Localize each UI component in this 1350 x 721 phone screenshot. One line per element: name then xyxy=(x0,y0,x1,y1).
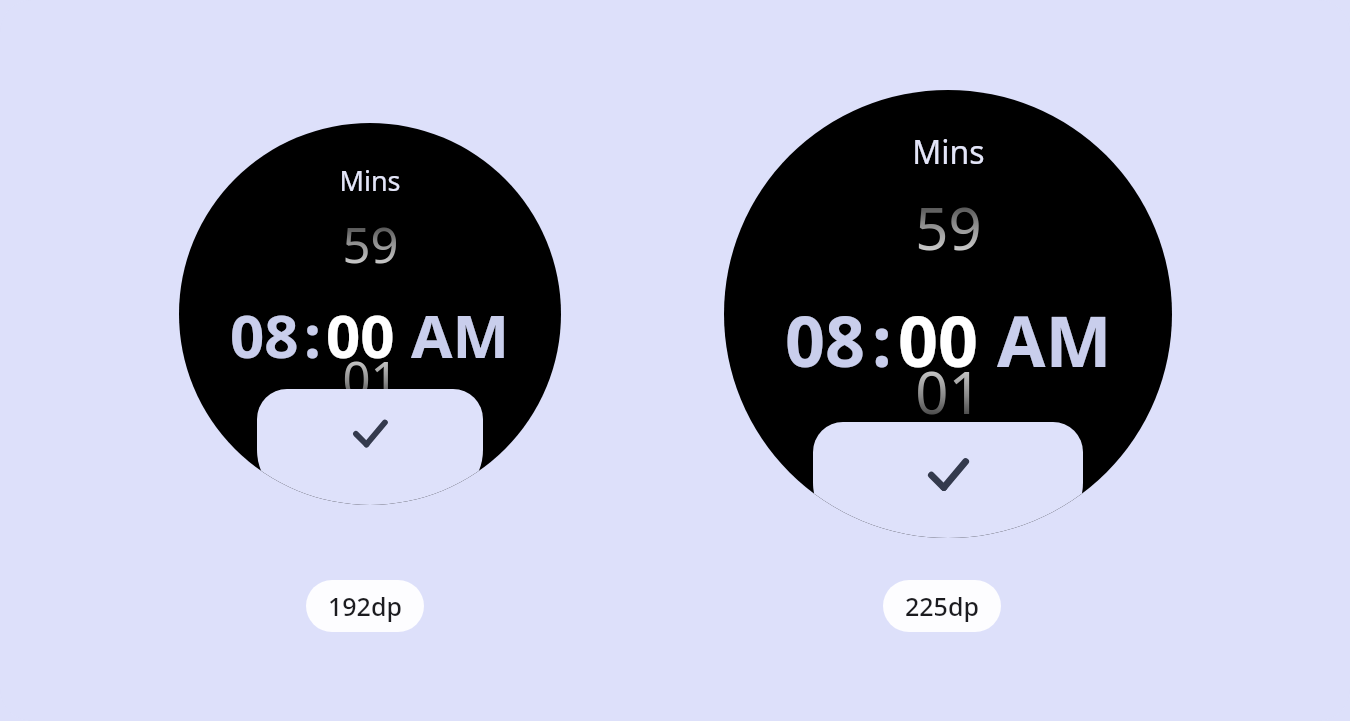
staticText: Mins xyxy=(339,162,401,199)
staticText: 59 xyxy=(342,211,399,278)
button[interactable]: AM xyxy=(411,294,510,376)
button[interactable]: 00 xyxy=(898,292,979,387)
button[interactable]: 225dp xyxy=(883,580,1001,632)
button[interactable]: Confirm xyxy=(813,422,1083,538)
staticText: Mins xyxy=(912,130,985,174)
button[interactable]: Confirm xyxy=(257,389,483,505)
staticText: 59 xyxy=(915,188,982,267)
button[interactable]: 08 xyxy=(785,292,866,387)
staticText: 01 xyxy=(342,345,399,412)
button[interactable]: 08 xyxy=(230,294,299,376)
button[interactable]: 00 xyxy=(326,294,395,376)
staticText: 225dp xyxy=(905,589,979,623)
button[interactable]: AM xyxy=(997,292,1112,387)
staticText: : xyxy=(304,294,321,376)
button[interactable]: 192dp xyxy=(306,580,424,632)
staticText: 01 xyxy=(915,352,982,431)
staticText: : xyxy=(872,292,892,387)
staticText: 192dp xyxy=(328,589,402,623)
